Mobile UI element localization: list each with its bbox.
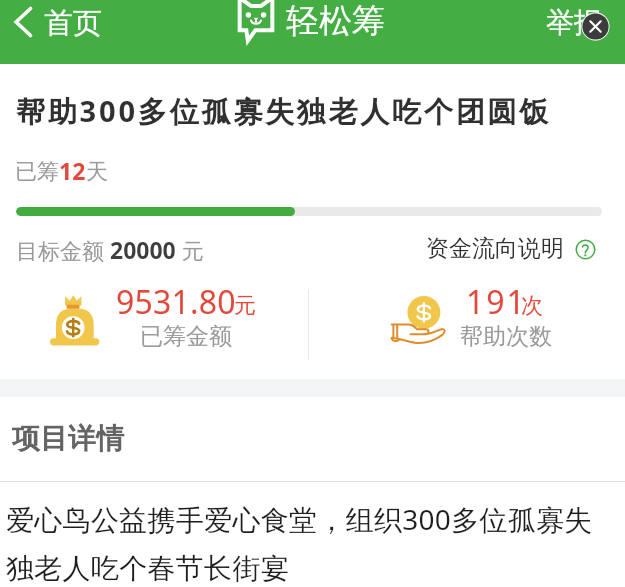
button[interactable]: 首页 [0, 0, 112, 63]
staticText: 已筹金额 [140, 322, 232, 351]
staticText: 191 [466, 280, 527, 324]
staticText: 20000 [110, 234, 176, 265]
button[interactable]: Close [581, 12, 610, 41]
staticText: 元 [234, 292, 256, 320]
staticText: 天 [86, 158, 108, 186]
staticText: 爱心鸟公益携手爱心食堂，组织300多位孤寡失独老人吃个春节长街宴 [6, 500, 598, 586]
staticText: 项目详情 [12, 421, 124, 456]
button[interactable]: 资金流向说明 [426, 234, 596, 263]
staticText: 轻松筹 [286, 0, 385, 42]
staticText: 首页 [44, 5, 102, 42]
staticText: 帮助次数 [460, 322, 552, 351]
staticText: 元 [176, 235, 204, 265]
staticText: 目标金额 [16, 235, 110, 265]
staticText: 帮助300多位孤寡失独老人吃个团圆饭 [16, 91, 552, 131]
staticText: 资金流向说明 [426, 234, 564, 263]
staticText: 已筹 [15, 158, 59, 186]
staticText: 12 [59, 155, 86, 186]
button[interactable]: 举报 [546, 5, 602, 40]
staticText: 9531.80 [116, 280, 236, 324]
staticText: 次 [521, 292, 543, 320]
